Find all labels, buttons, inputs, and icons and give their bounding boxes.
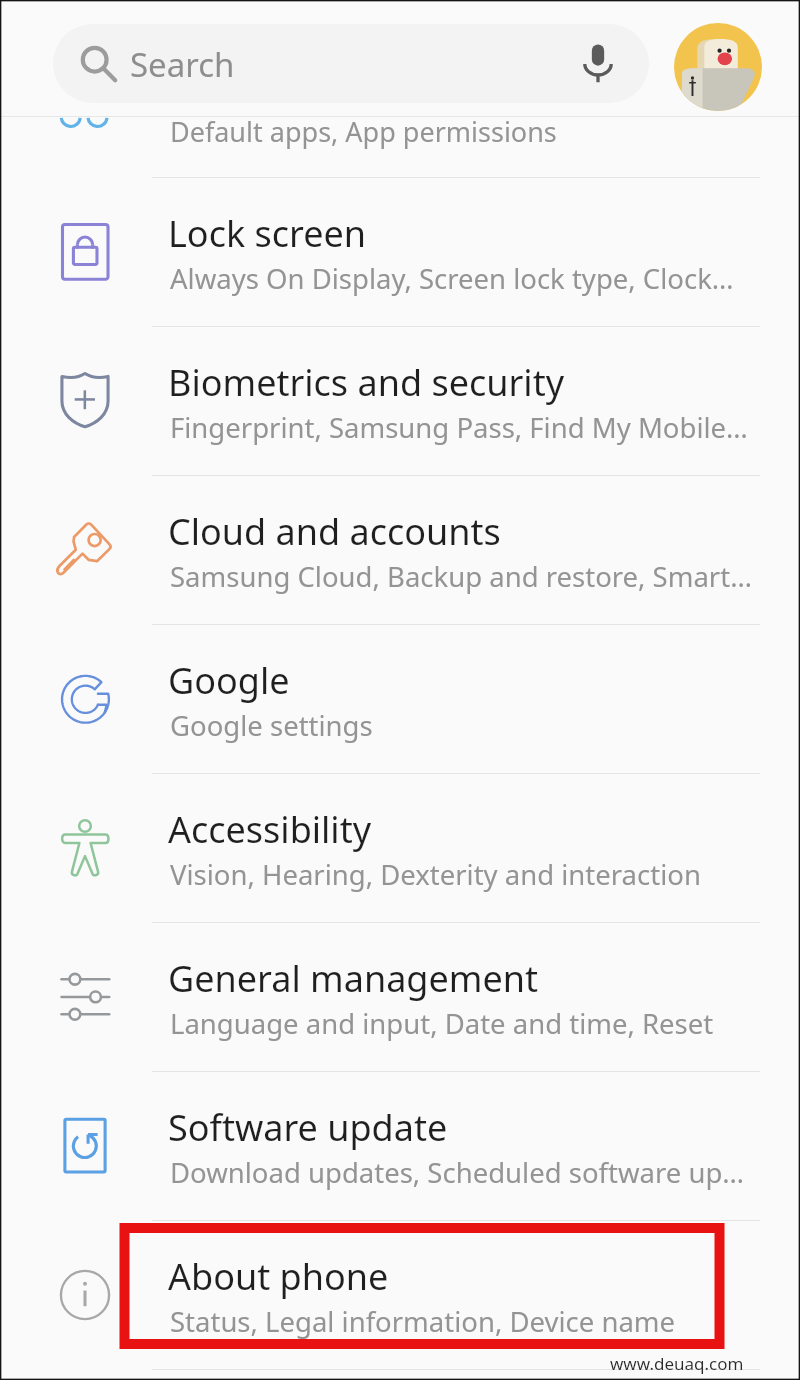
button[interactable]: Google (0, 625, 800, 773)
staticText: Always On Display, Screen lock type, Clo… (170, 260, 770, 297)
other: Voice search (576, 41, 620, 85)
staticText: Google settings (170, 707, 770, 744)
staticText: Lock screen (168, 209, 367, 258)
staticText: Default apps, App permissions (170, 113, 557, 150)
staticText: Vision, Hearing, Dexterity and interacti… (170, 856, 770, 893)
button[interactable]: About phone (0, 1221, 800, 1369)
staticText: About phone (168, 1252, 389, 1301)
button[interactable]: Search (53, 24, 649, 103)
staticText: Status, Legal information, Device name (170, 1303, 770, 1340)
staticText: Fingerprint, Samsung Pass, Find My Mobil… (170, 409, 770, 446)
staticText: Download updates, Scheduled software up… (170, 1154, 770, 1191)
staticText: Language and input, Date and time, Reset (170, 1005, 770, 1042)
staticText: Accessibility (168, 805, 372, 854)
staticText: Cloud and accounts (168, 507, 501, 556)
staticText: www.deuaq.com (610, 1352, 744, 1375)
button[interactable]: Biometrics and security (0, 327, 800, 475)
staticText: Google (168, 656, 290, 705)
button[interactable]: General management (0, 923, 800, 1071)
button[interactable]: Accessibility (0, 774, 800, 922)
staticText: Biometrics and security (168, 358, 565, 407)
staticText: Software update (168, 1103, 448, 1152)
button[interactable]: Lock screen (0, 178, 800, 326)
button[interactable]: Profile (674, 23, 762, 111)
button[interactable]: Software update (0, 1072, 800, 1220)
staticText: Samsung Cloud, Backup and restore, Smart… (170, 558, 770, 595)
button[interactable]: Cloud and accounts (0, 476, 800, 624)
staticText: Search (130, 42, 235, 87)
staticText: General management (168, 954, 539, 1003)
